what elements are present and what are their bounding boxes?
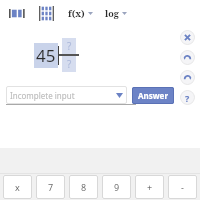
staticText: 8	[81, 181, 87, 193]
button[interactable]: Answer	[132, 87, 174, 104]
button[interactable]: -	[168, 175, 197, 199]
staticText: 9	[114, 181, 120, 193]
button[interactable]: Insert cell	[6, 3, 28, 23]
button[interactable]: 9	[102, 175, 131, 199]
button[interactable]: Insert table	[36, 3, 56, 23]
staticText: +	[147, 181, 153, 193]
button[interactable]: 45	[36, 44, 56, 67]
button[interactable]: 7	[36, 175, 65, 199]
staticText: Answer	[138, 90, 168, 101]
staticText: x	[15, 181, 20, 193]
staticText: ?	[67, 57, 72, 71]
staticText: f(x)	[68, 7, 85, 19]
button[interactable]: 8	[69, 175, 98, 199]
button[interactable]: Help	[180, 90, 195, 105]
button[interactable]: f(x)	[66, 5, 95, 21]
staticText: Incomplete input	[10, 90, 116, 101]
button[interactable]: Close	[180, 30, 195, 45]
button[interactable]: +	[135, 175, 164, 199]
staticText: 45	[36, 44, 56, 67]
button[interactable]: Incomplete input	[6, 86, 127, 104]
button[interactable]: Undo	[180, 50, 195, 65]
staticText: ?	[185, 92, 190, 104]
button[interactable]: Redo	[180, 70, 195, 85]
button[interactable]: ?	[59, 38, 79, 72]
button[interactable]: log	[103, 5, 129, 21]
staticText: -	[181, 181, 184, 193]
staticText: log	[105, 7, 119, 19]
button[interactable]: x	[3, 175, 32, 199]
staticText: 7	[48, 181, 54, 193]
staticText: ?	[67, 39, 72, 53]
